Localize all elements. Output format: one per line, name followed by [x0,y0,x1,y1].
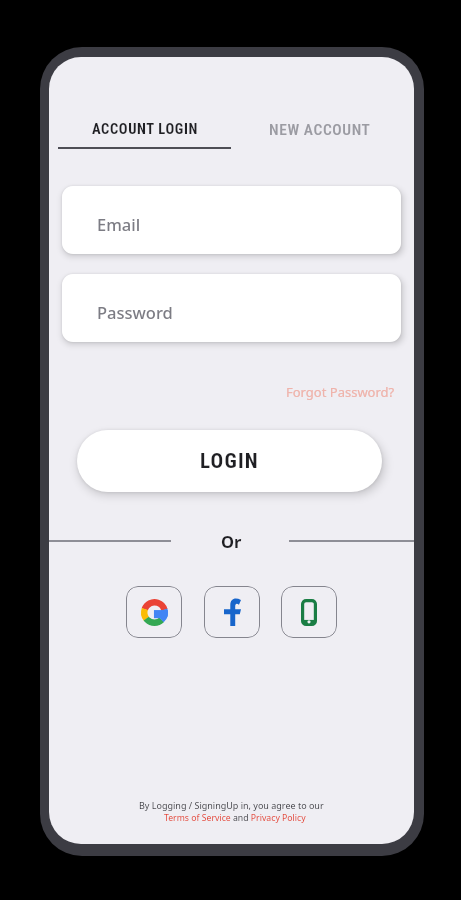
staticText: Password [97,301,173,323]
staticText: Terms of Service and Privacy Policy [164,812,306,824]
button[interactable]: Terms of Service and Privacy Policy [158,812,306,824]
button[interactable]: Sign in with Google [126,586,182,638]
button[interactable]: ACCOUNT LOGIN [58,121,231,159]
button[interactable]: Email [62,186,401,254]
staticText: By Logging / SigningUp in, you agree to … [139,799,324,811]
staticText: NEW ACCOUNT [269,121,371,139]
staticText: Or [221,530,242,552]
button[interactable]: NEW ACCOUNT [243,121,396,159]
staticText: Email [97,213,141,235]
button[interactable]: Sign in with phone [281,586,337,638]
button[interactable]: Forgot Password? [281,378,400,406]
staticText: ACCOUNT LOGIN [92,121,198,138]
staticText: Forgot Password? [286,383,395,401]
button[interactable]: LOGIN [77,430,382,492]
button[interactable]: Password [62,274,401,342]
staticText: LOGIN [200,449,259,474]
button[interactable]: Sign in with Facebook [204,586,260,638]
